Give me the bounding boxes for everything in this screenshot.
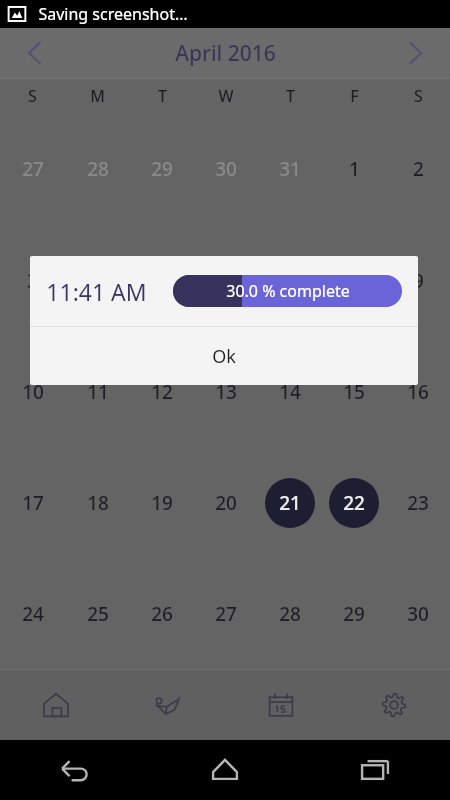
button[interactable]: 9: [386, 225, 450, 336]
staticText: F: [350, 85, 359, 107]
button[interactable]: 26: [130, 558, 194, 669]
staticText: 28: [87, 156, 109, 182]
button[interactable]: 22: [322, 447, 386, 558]
button[interactable]: 23: [386, 447, 450, 558]
staticText: 4: [92, 268, 103, 294]
staticText: 28: [279, 601, 301, 627]
button[interactable]: 28: [65, 113, 130, 225]
staticText: T: [286, 85, 295, 107]
staticText: 27: [22, 156, 44, 182]
button[interactable]: 24: [0, 558, 65, 669]
staticText: 27: [215, 601, 237, 627]
staticText: 12: [151, 379, 173, 405]
button[interactable]: 15: [322, 336, 386, 447]
staticText: 22: [343, 490, 365, 516]
button[interactable]: 27: [194, 558, 258, 669]
staticText: April 2016: [175, 39, 276, 68]
button[interactable]: Next month: [380, 28, 450, 78]
staticText: Ok: [212, 344, 236, 369]
button[interactable]: 6: [194, 225, 258, 336]
button[interactable]: 13: [194, 336, 258, 447]
button[interactable]: 12: [130, 336, 194, 447]
staticText: 14: [279, 379, 301, 405]
staticText: 9: [413, 268, 424, 294]
button[interactable]: 3: [0, 225, 65, 336]
button[interactable]: 31: [258, 113, 322, 225]
button[interactable]: Recents: [300, 740, 450, 800]
staticText: 25: [87, 601, 109, 627]
staticText: 30.0 % complete: [226, 280, 350, 302]
staticText: S: [28, 85, 37, 107]
staticText: 1: [349, 156, 360, 182]
staticText: 18: [87, 490, 109, 516]
button[interactable]: 25: [65, 558, 130, 669]
staticText: 29: [343, 601, 365, 627]
staticText: 26: [151, 601, 173, 627]
button[interactable]: 19: [130, 447, 194, 558]
button[interactable]: 11: [65, 336, 130, 447]
staticText: 8: [349, 268, 360, 294]
staticText: 19: [151, 490, 173, 516]
staticText: M: [90, 85, 105, 107]
staticText: 3: [27, 268, 38, 294]
staticText: 2: [413, 156, 424, 182]
button[interactable]: 20: [194, 447, 258, 558]
button[interactable]: 1: [322, 113, 386, 225]
button[interactable]: 28: [258, 558, 322, 669]
staticText: 20: [215, 490, 237, 516]
button[interactable]: Home: [150, 740, 300, 800]
button[interactable]: 30: [194, 113, 258, 225]
button[interactable]: 8: [322, 225, 386, 336]
button[interactable]: Settings: [337, 670, 450, 740]
button[interactable]: 18: [65, 447, 130, 558]
staticText: 23: [407, 490, 429, 516]
button[interactable]: 30: [386, 558, 450, 669]
button[interactable]: 21: [258, 447, 322, 558]
button[interactable]: Previous month: [0, 28, 70, 78]
staticText: S: [414, 85, 423, 107]
staticText: T: [158, 85, 167, 107]
staticText: 6: [221, 268, 232, 294]
staticText: 11: [87, 379, 109, 405]
button[interactable]: Home: [0, 670, 112, 740]
button[interactable]: 27: [0, 113, 65, 225]
staticText: Saving screenshot…: [38, 3, 188, 25]
staticText: 30: [407, 601, 429, 627]
button[interactable]: 17: [0, 447, 65, 558]
staticText: 21: [279, 490, 301, 516]
staticText: 13: [215, 379, 237, 405]
staticText: 31: [279, 156, 301, 182]
staticText: 29: [151, 156, 173, 182]
button[interactable]: 16: [386, 336, 450, 447]
button[interactable]: Back: [0, 740, 150, 800]
button[interactable]: Ok: [30, 327, 418, 385]
staticText: 24: [22, 601, 44, 627]
button[interactable]: 29: [322, 558, 386, 669]
button[interactable]: 2: [386, 113, 450, 225]
staticText: 10: [22, 379, 44, 405]
staticText: 17: [22, 490, 44, 516]
button[interactable]: Calendar: [224, 670, 337, 740]
staticText: 15: [343, 379, 365, 405]
staticText: 16: [407, 379, 429, 405]
button[interactable]: 4: [65, 225, 130, 336]
button[interactable]: Exercises: [112, 670, 224, 740]
staticText: 11:41 AM: [46, 276, 147, 307]
staticText: 7: [285, 268, 296, 294]
button[interactable]: 14: [258, 336, 322, 447]
staticText: W: [218, 85, 234, 107]
staticText: 30: [215, 156, 237, 182]
button[interactable]: 7: [258, 225, 322, 336]
button[interactable]: 10: [0, 336, 65, 447]
button[interactable]: 29: [130, 113, 194, 225]
button[interactable]: 5: [130, 225, 194, 336]
